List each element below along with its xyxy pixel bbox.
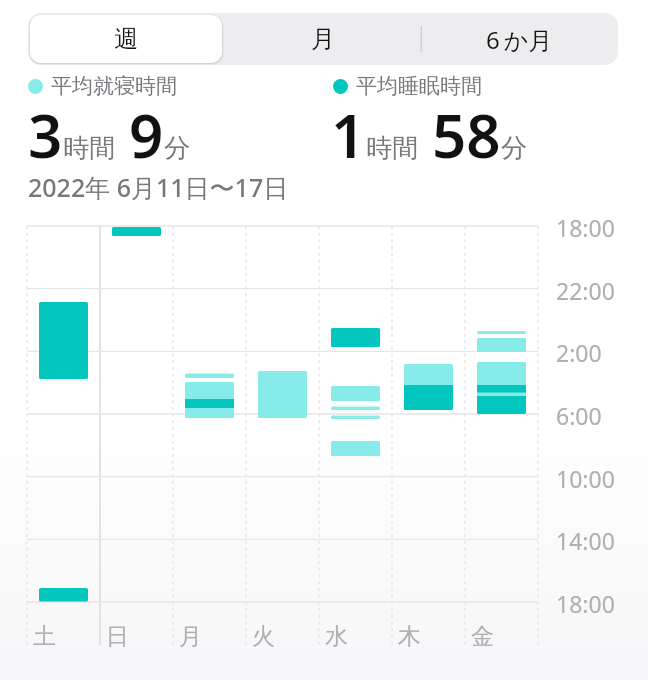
- staticText: 水: [325, 622, 348, 651]
- staticText: 分: [164, 132, 190, 165]
- button[interactable]: 木: [392, 226, 465, 645]
- staticText: 日: [106, 622, 129, 651]
- staticText: 月: [311, 24, 335, 54]
- button[interactable]: 週: [28, 13, 224, 65]
- staticText: 6:00: [556, 400, 602, 431]
- staticText: 2022年 6月11日〜17日: [28, 170, 289, 204]
- staticText: 6 か月: [486, 23, 553, 56]
- staticText: 18:00: [556, 212, 615, 243]
- staticText: 月: [179, 622, 202, 651]
- button[interactable]: 火: [246, 226, 319, 645]
- staticText: 10:00: [556, 463, 615, 494]
- staticText: 時間: [63, 132, 115, 165]
- button[interactable]: 水: [319, 226, 392, 645]
- staticText: 3: [28, 94, 63, 176]
- button[interactable]: 金: [465, 226, 538, 645]
- button[interactable]: 月: [173, 226, 246, 645]
- staticText: 9: [129, 94, 164, 176]
- staticText: 18:00: [556, 588, 615, 619]
- staticText: 時間: [366, 132, 418, 165]
- staticText: 木: [398, 622, 421, 651]
- staticText: 22:00: [556, 275, 615, 306]
- staticText: 1: [331, 94, 366, 176]
- staticText: 分: [501, 132, 527, 165]
- staticText: 金: [471, 622, 494, 651]
- staticText: 14:00: [556, 525, 615, 556]
- staticText: 58: [432, 94, 501, 176]
- staticText: 火: [252, 622, 275, 651]
- staticText: 平均就寝時間: [51, 73, 177, 99]
- button[interactable]: 月: [224, 13, 421, 65]
- staticText: 2:00: [556, 337, 602, 368]
- button[interactable]: 土: [27, 226, 100, 645]
- staticText: 土: [33, 622, 56, 651]
- staticText: 週: [114, 24, 138, 54]
- staticText: 平均睡眠時間: [356, 73, 482, 99]
- button[interactable]: 6 か月: [421, 13, 618, 65]
- button[interactable]: 日: [100, 226, 173, 645]
